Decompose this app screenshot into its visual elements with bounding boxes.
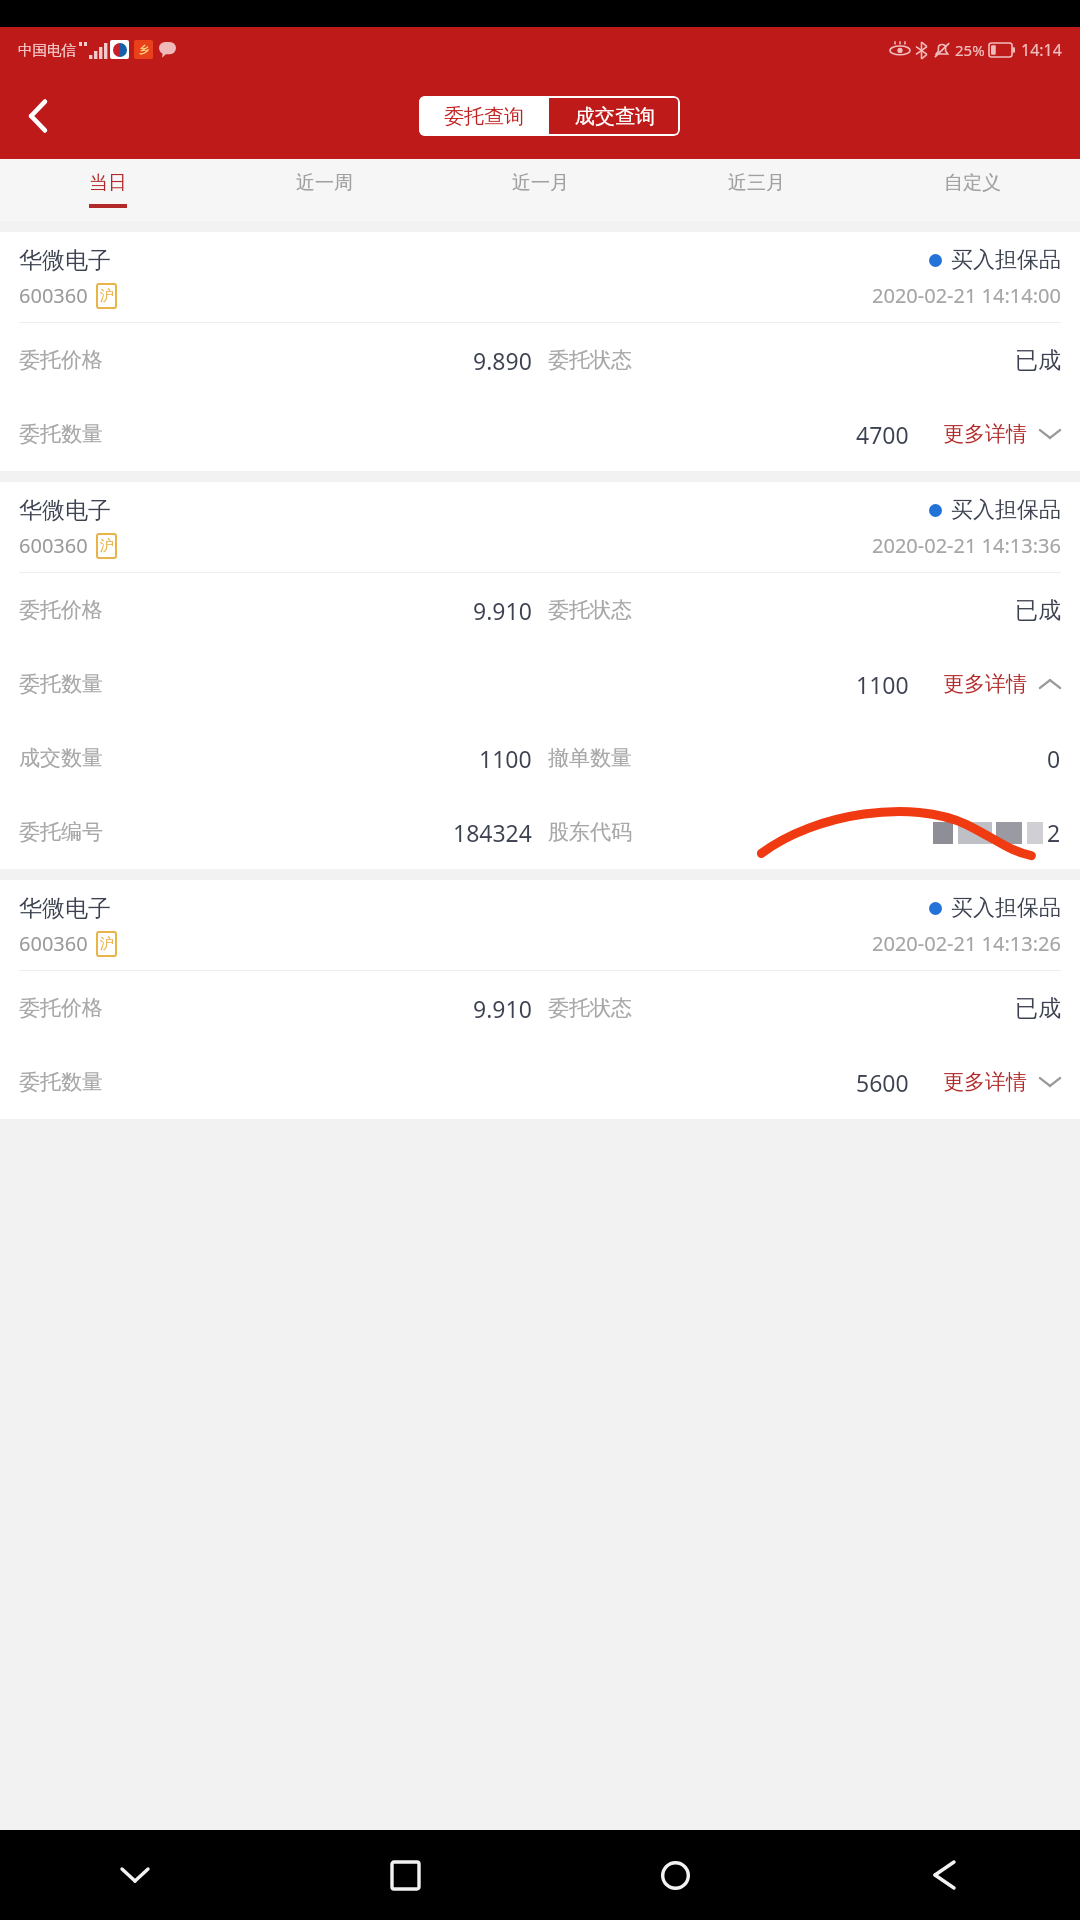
button[interactable]: Back [810,1830,1080,1920]
button[interactable]: Home [540,1830,810,1920]
staticText: 委托查询 [444,104,524,129]
button[interactable]: 成交查询 [549,96,680,136]
button[interactable]: 华微电子 [0,232,1080,471]
staticText: 2 [1047,817,1061,848]
staticText: 中国电信 [18,41,76,59]
staticText: 沪 [100,537,114,555]
staticText: 买入担保品 [951,246,1061,274]
staticText: 华微电子 [19,894,111,923]
staticText: 委托数量 [19,1069,103,1095]
staticText: 2020-02-21 14:13:26 [872,930,1061,957]
staticText: 0 [1047,743,1061,774]
staticText: 委托数量 [19,671,103,697]
staticText: 25% [955,40,985,60]
button[interactable]: 更多详情 [943,1069,1061,1095]
staticText: 近三月 [728,171,785,195]
staticText: 14:14 [1021,39,1062,61]
button[interactable]: 近三月 [648,159,864,221]
button[interactable]: 委托查询 [419,96,549,136]
staticText: 沪 [100,287,114,305]
button[interactable]: 近一月 [432,159,648,221]
staticText: 股东代码 [548,819,632,845]
button[interactable]: Hide keyboard [0,1830,270,1920]
staticText: 更多详情 [943,671,1027,697]
staticText: 近一月 [512,171,569,195]
staticText: 华微电子 [19,246,111,275]
staticText: 更多详情 [943,421,1027,447]
staticText: 撤单数量 [548,745,632,771]
staticText: 委托编号 [19,819,103,845]
button[interactable]: 华微电子 [0,482,1080,869]
staticText: 自定义 [944,171,1001,195]
staticText: 已成 [1015,346,1061,375]
staticText: 买入担保品 [951,496,1061,524]
staticText: 华微电子 [19,496,111,525]
staticText: 乡 [139,43,149,56]
staticText: 600360 [19,532,88,559]
staticText: 更多详情 [943,1069,1027,1095]
staticText: 买入担保品 [951,894,1061,922]
staticText: 2020-02-21 14:13:36 [872,532,1061,559]
staticText: 9.910 [473,993,532,1024]
button[interactable]: 更多详情 [943,421,1061,447]
staticText: 当日 [89,171,127,195]
button[interactable]: Recents [270,1830,540,1920]
staticText: 委托状态 [548,347,632,373]
staticText: 已成 [1015,596,1061,625]
button[interactable]: 自定义 [864,159,1080,221]
button[interactable]: 华微电子 [0,880,1080,1119]
staticText: 600360 [19,282,88,309]
button[interactable]: 当日 [0,159,216,221]
staticText: 1100 [479,743,532,774]
button[interactable]: 更多详情 [943,671,1061,697]
staticText: 委托状态 [548,597,632,623]
staticText: 成交数量 [19,745,103,771]
staticText: 成交查询 [575,104,655,129]
staticText: 委托数量 [19,421,103,447]
staticText: 委托状态 [548,995,632,1021]
staticText: 沪 [100,935,114,953]
staticText: 600360 [19,930,88,957]
button[interactable]: 近一周 [216,159,432,221]
button[interactable]: Back [10,88,66,144]
staticText: 委托价格 [19,995,103,1021]
staticText: 184324 [453,817,532,848]
staticText: 委托价格 [19,347,103,373]
staticText: 委托价格 [19,597,103,623]
staticText: 近一周 [296,171,353,195]
staticText: 5600 [856,1067,909,1098]
staticText: 4700 [856,419,909,450]
staticText: 已成 [1015,994,1061,1023]
staticText: 9.890 [473,345,532,376]
staticText: 2020-02-21 14:14:00 [872,282,1061,309]
staticText: 1100 [856,669,909,700]
staticText: 9.910 [473,595,532,626]
